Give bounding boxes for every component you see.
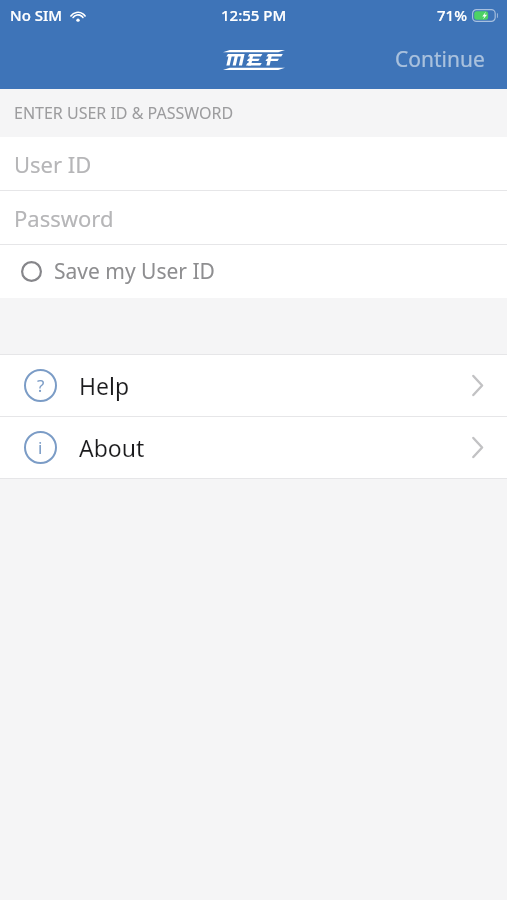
staticText: No SIM — [10, 5, 63, 25]
staticText: About — [79, 432, 145, 463]
staticText: ? — [37, 374, 45, 397]
staticText: Save my User ID — [54, 257, 215, 286]
staticText: Continue — [395, 45, 485, 74]
button[interactable]: User ID — [0, 137, 507, 190]
staticText: Help — [79, 370, 130, 401]
staticText: Password — [14, 203, 114, 233]
staticText: User ID — [14, 149, 92, 179]
button[interactable]: Continue — [373, 35, 507, 84]
button[interactable]: ? — [0, 355, 507, 416]
staticText: i — [38, 436, 43, 459]
staticText: 12:55 PM — [221, 5, 287, 25]
staticText: ENTER USER ID & PASSWORD — [14, 102, 234, 124]
button[interactable]: i — [0, 417, 507, 478]
button[interactable] — [223, 50, 285, 70]
button[interactable]: Password — [0, 191, 507, 244]
button[interactable]: Save my User ID — [0, 245, 507, 298]
staticText: 71% — [437, 5, 467, 25]
